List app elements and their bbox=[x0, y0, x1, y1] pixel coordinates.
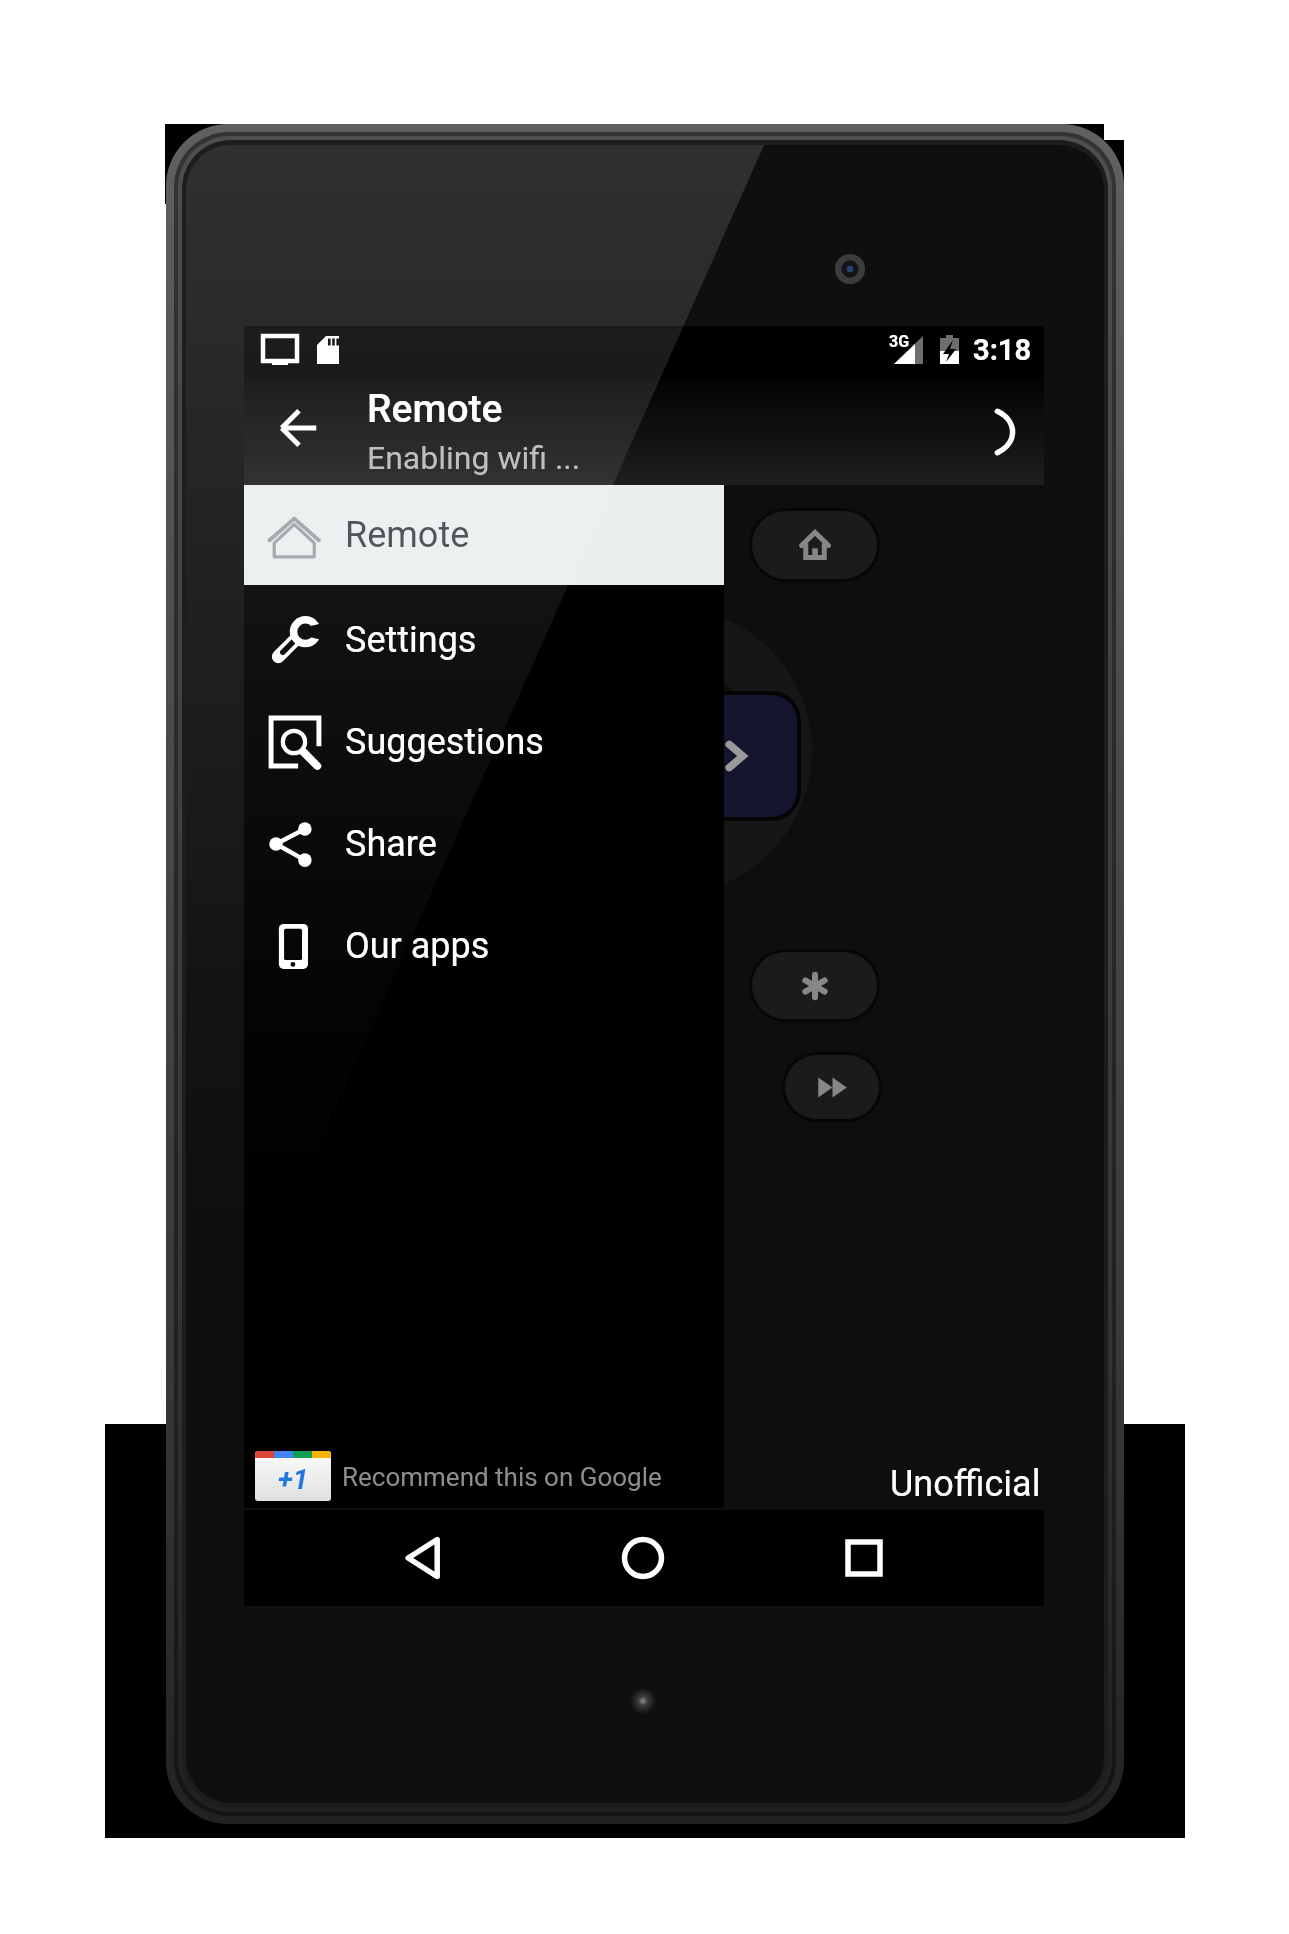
staticText: Share bbox=[345, 823, 437, 865]
button[interactable]: Home bbox=[752, 511, 877, 579]
staticText: Unofficial bbox=[890, 1463, 1041, 1505]
button[interactable]: Our apps bbox=[244, 891, 724, 993]
button[interactable]: Back bbox=[374, 1510, 474, 1606]
button[interactable]: Navigate up bbox=[251, 380, 347, 476]
staticText: 3G bbox=[889, 332, 910, 351]
staticText: Recommend this on Google bbox=[342, 1462, 662, 1492]
staticText: Remote bbox=[345, 514, 470, 556]
button[interactable]: Settings bbox=[244, 585, 724, 687]
button[interactable]: Suggestions bbox=[244, 687, 724, 789]
button[interactable]: Star bbox=[752, 952, 877, 1019]
staticText: Suggestions bbox=[345, 721, 544, 763]
staticText: Our apps bbox=[345, 925, 490, 967]
button[interactable]: +1 bbox=[255, 1451, 662, 1501]
button[interactable]: Remote bbox=[244, 485, 724, 585]
staticText: 3:18 bbox=[973, 333, 1032, 367]
button[interactable]: Recent apps bbox=[814, 1510, 914, 1606]
button[interactable]: Fast forward bbox=[785, 1055, 879, 1119]
staticText: Enabling wifi ... bbox=[367, 439, 581, 477]
staticText: Remote bbox=[367, 386, 503, 432]
button[interactable]: Right bbox=[674, 695, 797, 817]
button[interactable]: Home bbox=[593, 1510, 693, 1606]
staticText: +1 bbox=[278, 1463, 309, 1496]
button[interactable]: Connection status bbox=[960, 390, 1044, 474]
button[interactable]: Share bbox=[244, 789, 724, 891]
staticText: Settings bbox=[345, 619, 477, 661]
